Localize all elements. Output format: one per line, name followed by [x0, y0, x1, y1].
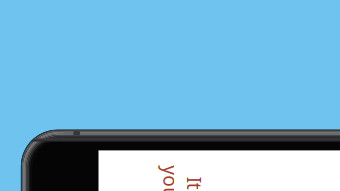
staticText: you: [154, 169, 188, 191]
staticText: It: [188, 170, 201, 191]
